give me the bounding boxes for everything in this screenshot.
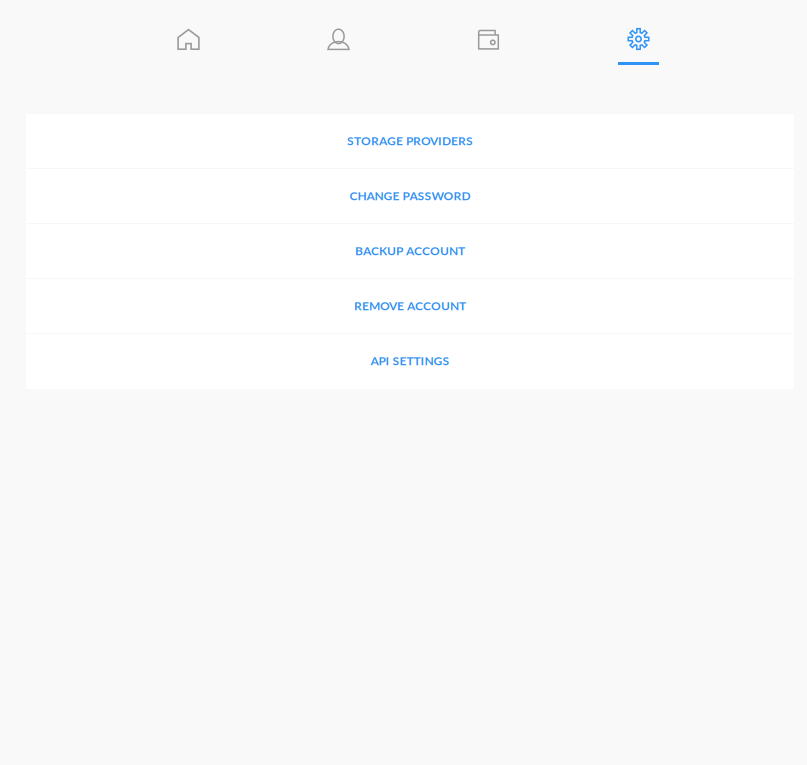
staticText: CHANGE PASSWORD (349, 188, 470, 203)
button[interactable]: Settings (563, 0, 713, 80)
button[interactable]: API SETTINGS (26, 334, 794, 389)
button[interactable]: Home (113, 0, 263, 80)
staticText: STORAGE PROVIDERS (347, 133, 473, 148)
button[interactable]: STORAGE PROVIDERS (26, 114, 794, 169)
button[interactable]: REMOVE ACCOUNT (26, 279, 794, 334)
button[interactable]: CHANGE PASSWORD (26, 169, 794, 224)
staticText: BACKUP ACCOUNT (355, 243, 465, 258)
button[interactable]: Account (263, 0, 413, 80)
staticText: REMOVE ACCOUNT (354, 298, 466, 313)
button[interactable]: Wallet (413, 0, 563, 80)
button[interactable]: BACKUP ACCOUNT (26, 224, 794, 279)
staticText: API SETTINGS (370, 353, 449, 368)
